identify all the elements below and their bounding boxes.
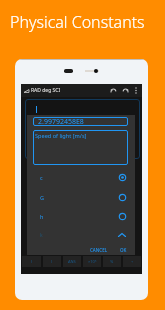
button[interactable]: Speed of light [m/s]	[33, 130, 128, 165]
button[interactable]: ÷	[123, 256, 141, 267]
button[interactable]: More options	[132, 85, 140, 96]
staticText: G	[40, 194, 45, 201]
button[interactable]: ANS	[63, 256, 81, 267]
button[interactable]: RAD deg SCI	[21, 84, 142, 97]
button[interactable]: 2.99792458E8	[33, 117, 128, 126]
button[interactable]: ×10ⁿ	[83, 256, 101, 267]
staticText: Physical Constants	[10, 11, 145, 33]
staticText: %	[110, 259, 114, 264]
button[interactable]: Undo	[109, 86, 118, 95]
button[interactable]: Collapse list	[115, 228, 128, 241]
button[interactable]: c	[27, 168, 135, 187]
staticText: ANS	[68, 259, 76, 264]
button[interactable]: CANCEL	[88, 247, 110, 253]
button[interactable]: k	[40, 232, 43, 239]
staticText: CANCEL	[90, 247, 108, 253]
button[interactable]: Redo	[121, 86, 130, 95]
button[interactable]: %	[103, 256, 121, 267]
staticText: )	[51, 259, 53, 264]
staticText: h	[40, 213, 44, 220]
button[interactable]: )	[43, 256, 61, 267]
staticText: ÷	[131, 259, 134, 264]
staticText: RAD deg SCI	[31, 87, 61, 94]
staticText: ×10ⁿ	[88, 259, 97, 264]
button[interactable]: G	[27, 188, 135, 207]
staticText: OK	[120, 247, 127, 253]
button[interactable]: (	[22, 256, 41, 267]
staticText: 2.99792458E8	[38, 117, 84, 126]
staticText: Speed of light [m/s]	[35, 132, 87, 140]
button[interactable]: h	[27, 207, 135, 226]
staticText: (	[31, 259, 33, 264]
staticText: k	[40, 232, 43, 239]
staticText: c	[40, 174, 43, 181]
button[interactable]: OK	[118, 247, 129, 253]
